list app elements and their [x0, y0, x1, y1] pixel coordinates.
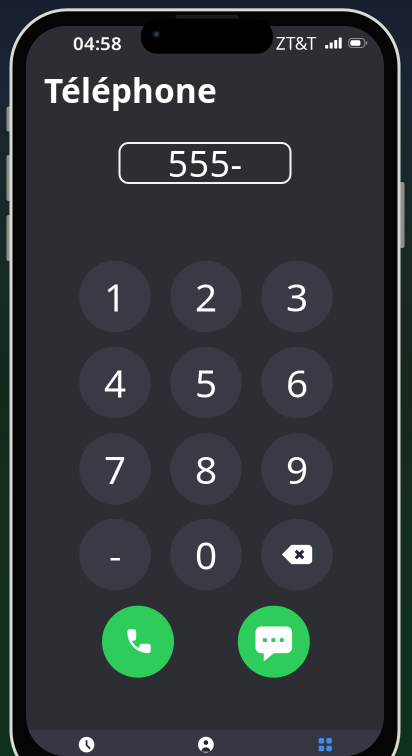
button[interactable]: 4 [79, 347, 151, 418]
button[interactable]: Récents [27, 730, 146, 756]
staticText: 2 [195, 271, 217, 322]
button[interactable]: Clavier [266, 730, 385, 756]
staticText: 04:58 [73, 31, 122, 55]
staticText: 6 [286, 357, 308, 408]
staticText: 1 [104, 271, 126, 322]
button[interactable]: 9 [261, 433, 333, 505]
staticText: 5 [195, 357, 217, 408]
button[interactable]: 0 [170, 519, 242, 590]
button[interactable]: Contacts [146, 730, 265, 756]
staticText: Téléphone [44, 68, 217, 112]
button[interactable]: 2 [170, 261, 242, 332]
button[interactable]: Message [238, 606, 310, 678]
button[interactable]: 5 [170, 347, 242, 418]
button[interactable]: 8 [170, 433, 242, 505]
staticText: 8 [195, 443, 217, 495]
button[interactable]: - [79, 519, 151, 590]
button[interactable]: 6 [261, 347, 333, 418]
staticText: - [109, 529, 121, 580]
button[interactable]: 3 [261, 261, 333, 332]
button[interactable]: Call [102, 606, 174, 678]
staticText: 4 [104, 357, 126, 408]
staticText: ZT&T [276, 31, 317, 54]
staticText: 0 [195, 529, 217, 580]
staticText: 7 [104, 443, 126, 495]
button[interactable] [261, 519, 333, 590]
button[interactable]: 1 [79, 261, 151, 332]
staticText: 555- [167, 139, 242, 187]
button[interactable]: 7 [79, 433, 151, 505]
staticText: 9 [286, 443, 308, 495]
staticText: 3 [286, 271, 308, 322]
